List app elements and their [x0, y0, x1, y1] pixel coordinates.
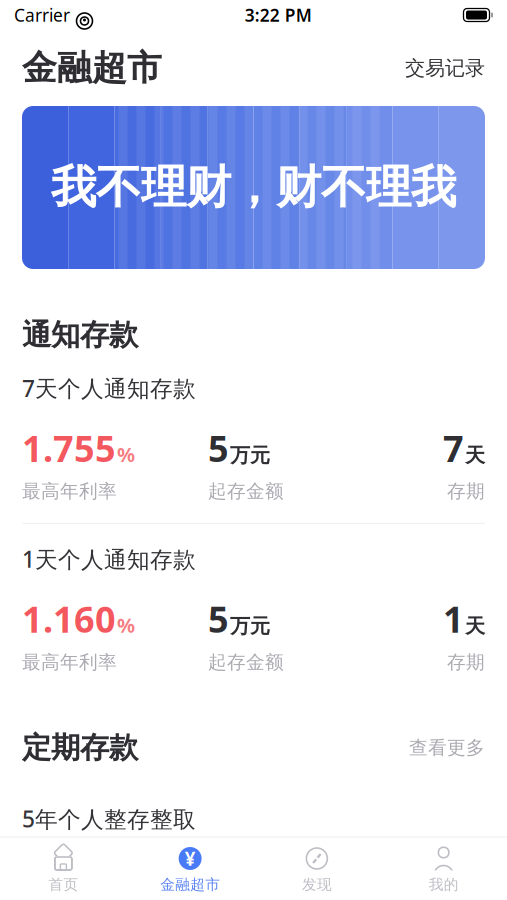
staticText: 5年个人整存整取 [22, 804, 196, 834]
staticText: % [117, 441, 135, 468]
staticText: 5 [208, 595, 229, 643]
button[interactable]: 交易记录 [395, 48, 485, 88]
staticText: 1天个人通知存款 [22, 544, 196, 574]
staticText: 我不理财，财不理我 [51, 160, 456, 215]
staticText: 7天个人通知存款 [22, 373, 196, 403]
button[interactable]: 查看更多 [399, 730, 485, 765]
staticText: 1.160 [22, 595, 116, 643]
staticText: 首页 [48, 875, 78, 893]
staticText: Carrier [14, 3, 70, 26]
staticText: 天 [465, 614, 485, 638]
staticText: 万元 [230, 443, 270, 468]
staticText: 存期 [447, 651, 485, 674]
staticText: 存期 [447, 480, 485, 503]
staticText: ¥ [185, 846, 196, 871]
button[interactable]: 发现 [253, 839, 380, 900]
staticText: 1 [443, 595, 464, 643]
button[interactable]: ¥ [127, 839, 254, 900]
staticText: 发现 [302, 875, 332, 893]
staticText: 天 [465, 443, 485, 468]
staticText: 最高年利率 [22, 651, 117, 674]
button[interactable]: 我的 [380, 839, 507, 900]
staticText: 起存金额 [208, 480, 284, 503]
staticText: 万元 [230, 614, 270, 638]
staticText: 3:22 PM [245, 3, 312, 26]
staticText: 通知存款 [22, 317, 138, 353]
staticText: 5 [208, 424, 229, 472]
staticText: 1.755 [22, 424, 116, 472]
staticText: 交易记录 [405, 56, 485, 80]
staticText: 起存金额 [208, 651, 284, 674]
button[interactable]: 1天个人通知存款 [0, 524, 507, 694]
staticText: 金融超市 [22, 47, 162, 89]
staticText: 查看更多 [409, 736, 485, 759]
staticText: 7 [443, 424, 464, 472]
staticText: 金融超市 [160, 875, 220, 893]
staticText: 最高年利率 [22, 480, 117, 503]
staticText: % [117, 612, 135, 638]
staticText: 我的 [429, 875, 459, 893]
button[interactable]: 我不理财，财不理我 [22, 106, 485, 269]
button[interactable]: 7天个人通知存款 [0, 353, 507, 523]
button[interactable]: 首页 [0, 839, 127, 900]
staticText: 定期存款 [22, 730, 138, 766]
